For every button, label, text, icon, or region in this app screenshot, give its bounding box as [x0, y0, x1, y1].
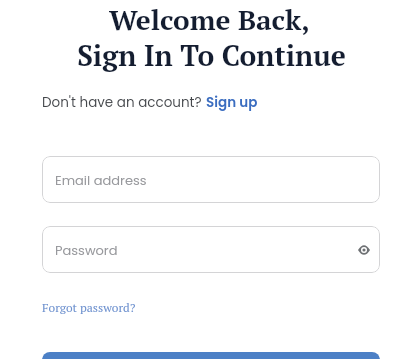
button[interactable]: Sign In: [42, 352, 380, 359]
staticText: Sign up: [206, 93, 258, 112]
button[interactable]: Forgot password?: [42, 300, 136, 316]
button[interactable]: Email address: [42, 156, 380, 203]
button[interactable]: Sign up: [206, 93, 258, 112]
staticText: Forgot password?: [42, 300, 136, 316]
button[interactable]: Password: [42, 226, 380, 273]
button[interactable]: Show password: [352, 238, 376, 262]
staticText: Welcome Back,: [1, 1, 417, 38]
staticText: Sign In To Continue: [3, 37, 417, 74]
staticText: Email address: [55, 171, 147, 189]
staticText: Don't have an account?: [42, 93, 206, 112]
staticText: Password: [55, 241, 118, 259]
